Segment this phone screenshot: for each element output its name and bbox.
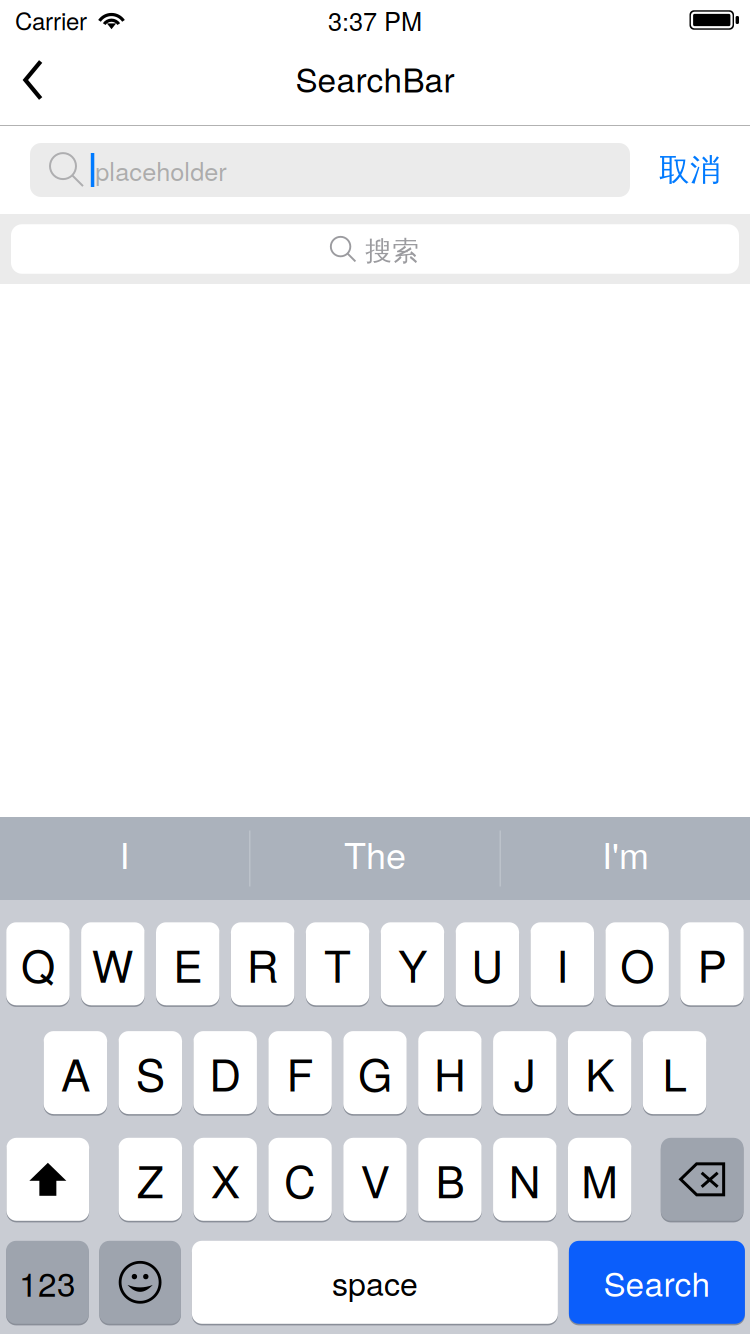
button[interactable]: 搜索 <box>11 224 739 274</box>
button[interactable]: 取消 <box>630 143 750 197</box>
staticText: I <box>556 932 568 995</box>
staticText: Carrier <box>15 3 87 37</box>
staticText: U <box>471 932 503 995</box>
staticText: Search <box>603 1258 710 1306</box>
staticText: T <box>324 932 351 995</box>
staticText: M <box>581 1148 618 1211</box>
staticText: G <box>358 1041 392 1104</box>
staticText: E <box>173 932 202 995</box>
staticText: Q <box>21 932 55 995</box>
button[interactable]: Z <box>119 1137 182 1222</box>
button[interactable]: X <box>193 1137 257 1222</box>
staticText: F <box>287 1041 314 1104</box>
button[interactable]: H <box>418 1030 482 1115</box>
staticText: placeholder <box>95 152 226 188</box>
staticText: I'm <box>602 828 649 879</box>
staticText: Y <box>398 932 427 995</box>
button[interactable]: I'm <box>501 817 750 900</box>
staticText: The <box>344 828 406 879</box>
button[interactable]: I <box>0 817 249 900</box>
staticText: H <box>434 1041 466 1104</box>
staticText: P <box>697 932 726 995</box>
button[interactable]: Search <box>569 1240 745 1325</box>
staticText: W <box>92 932 134 995</box>
staticText: X <box>211 1148 240 1211</box>
button[interactable]: K <box>568 1030 631 1115</box>
button[interactable]: B <box>418 1137 482 1222</box>
button[interactable]: R <box>231 921 294 1006</box>
button[interactable]: G <box>343 1030 407 1115</box>
staticText: J <box>514 1041 536 1104</box>
staticText: I <box>119 828 129 879</box>
button[interactable]: N <box>493 1137 557 1222</box>
button[interactable]: U <box>456 921 519 1006</box>
staticText: L <box>663 1041 687 1104</box>
button[interactable]: O <box>605 921 669 1006</box>
button[interactable]: A <box>44 1030 107 1115</box>
button[interactable]: F <box>268 1030 332 1115</box>
staticText: O <box>620 932 654 995</box>
staticText: 取消 <box>659 151 721 189</box>
button[interactable]: W <box>81 921 145 1006</box>
button[interactable]: L <box>643 1030 706 1115</box>
staticText: N <box>509 1148 541 1211</box>
button[interactable]: T <box>306 921 369 1006</box>
button[interactable]: Back <box>7 53 59 113</box>
button[interactable]: M <box>568 1137 631 1222</box>
button[interactable]: Emoji <box>99 1240 181 1325</box>
button[interactable]: Delete <box>661 1137 743 1222</box>
staticText: 搜索 <box>365 234 419 268</box>
staticText: D <box>209 1041 241 1104</box>
staticText: B <box>435 1148 464 1211</box>
staticText: A <box>61 1041 90 1104</box>
button[interactable]: J <box>493 1030 556 1115</box>
staticText: space <box>332 1259 418 1305</box>
button[interactable]: P <box>680 921 744 1006</box>
staticText: Z <box>137 1148 164 1211</box>
button[interactable]: I <box>530 921 594 1006</box>
button[interactable]: Shift <box>6 1137 89 1222</box>
staticText: 3:37 PM <box>328 2 422 38</box>
staticText: K <box>585 1041 614 1104</box>
staticText: SearchBar <box>295 54 454 102</box>
button[interactable]: Y <box>381 921 444 1006</box>
button[interactable]: S <box>118 1030 182 1115</box>
button[interactable]: space <box>192 1240 558 1325</box>
staticText: C <box>284 1148 316 1211</box>
staticText: 123 <box>19 1258 76 1306</box>
staticText: V <box>360 1148 389 1211</box>
button[interactable]: Q <box>6 921 70 1006</box>
staticText: R <box>247 932 279 995</box>
button[interactable]: V <box>343 1137 407 1222</box>
staticText: S <box>136 1041 165 1104</box>
button[interactable]: E <box>156 921 219 1006</box>
button[interactable]: C <box>268 1137 332 1222</box>
button[interactable]: 123 <box>6 1240 89 1325</box>
button[interactable]: D <box>193 1030 257 1115</box>
button[interactable]: The <box>250 817 499 900</box>
